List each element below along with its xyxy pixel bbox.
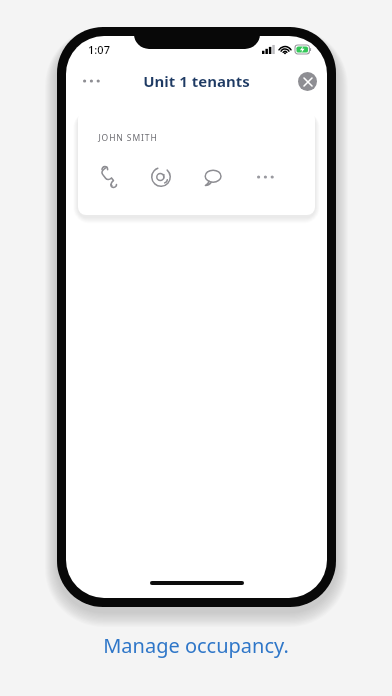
- button[interactable]: Call: [91, 159, 127, 195]
- button[interactable]: Email: [143, 159, 179, 195]
- button[interactable]: Message: [195, 159, 231, 195]
- staticText: Unit 1 tenants: [143, 71, 250, 91]
- button[interactable]: JOHN SMITH: [78, 111, 315, 215]
- staticText: 1:07: [88, 42, 110, 57]
- button[interactable]: More: [247, 159, 283, 195]
- button[interactable]: Close: [298, 72, 317, 91]
- button[interactable]: More options: [74, 64, 108, 98]
- staticText: Manage occupancy.: [103, 632, 289, 659]
- staticText: JOHN SMITH: [98, 132, 158, 144]
